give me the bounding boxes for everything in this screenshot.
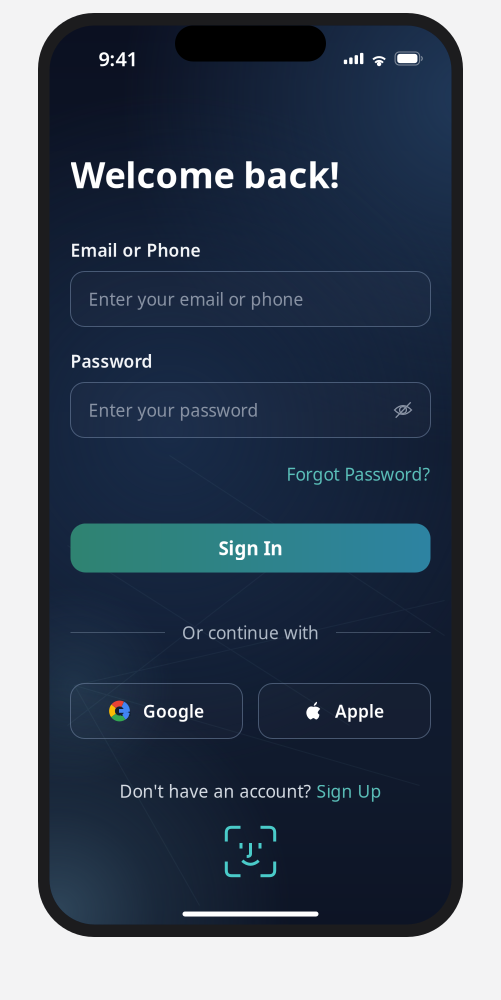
button[interactable]: Sign In: [70, 523, 430, 572]
staticText: Google: [143, 699, 204, 722]
button[interactable]: Sign Up: [316, 779, 381, 802]
staticText: 9:41: [98, 45, 137, 72]
staticText: Email or Phone: [70, 238, 200, 261]
button[interactable]: Forgot Password?: [276, 458, 430, 489]
staticText: Password: [70, 349, 152, 372]
button[interactable]: Show password: [393, 400, 412, 419]
staticText: Apple: [335, 699, 384, 722]
button[interactable]: Apple: [258, 683, 430, 738]
button[interactable]: Sign in with Face ID: [224, 825, 276, 877]
staticText: Sign Up: [316, 779, 381, 802]
staticText: Don't have an account?: [119, 779, 316, 802]
staticText: Enter your password: [88, 398, 258, 421]
staticText: Sign In: [218, 536, 282, 560]
staticText: Forgot Password?: [286, 462, 430, 485]
staticText: Welcome back!: [70, 150, 339, 198]
staticText: Enter your email or phone: [88, 287, 303, 310]
staticText: Or continue with: [182, 621, 319, 644]
button[interactable]: Google: [70, 683, 242, 738]
